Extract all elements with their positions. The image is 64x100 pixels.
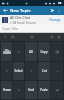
button[interactable]: Attach	[29, 34, 35, 40]
staticText: Topic Title	[2, 26, 18, 31]
button[interactable]: Settings	[56, 34, 62, 40]
staticText: Copy	[40, 50, 48, 54]
staticText: Home	[3, 88, 11, 92]
staticText: All Social Forums	[13, 21, 36, 24]
button[interactable]: Enter	[51, 81, 63, 99]
button[interactable]: Emoji	[49, 34, 55, 40]
button[interactable]: Home	[1, 81, 12, 99]
button[interactable]: End	[25, 81, 37, 99]
button[interactable]: More options	[56, 8, 62, 14]
staticText: Clip Board	[3, 49, 11, 55]
button[interactable]: Copy	[38, 42, 50, 61]
button[interactable]: Cut	[38, 62, 50, 80]
button[interactable]: Search	[10, 34, 16, 40]
button[interactable]: Clip Board	[1, 42, 12, 61]
button[interactable]: All Chit-Chat	[0, 15, 64, 24]
staticText: Select	[14, 69, 23, 73]
button[interactable]: Up	[13, 42, 24, 61]
staticText: End	[28, 88, 34, 92]
button[interactable]: Down	[13, 81, 24, 99]
button[interactable]: Topic Title	[0, 24, 64, 32]
staticText: All	[29, 50, 33, 54]
button[interactable]: Back	[2, 7, 9, 14]
button[interactable]: Right	[25, 62, 37, 80]
button[interactable]: Left	[1, 62, 12, 80]
button[interactable]: All	[25, 42, 37, 61]
button[interactable]: New Topic	[10, 8, 49, 14]
staticText: Paste	[40, 88, 48, 92]
staticText: All Chit-Chat	[10, 15, 31, 20]
button[interactable]: Change	[48, 17, 62, 23]
button[interactable]: Select	[13, 62, 24, 80]
staticText: Change	[49, 18, 61, 22]
button[interactable]: Send	[49, 7, 56, 14]
staticText: New Topic	[10, 8, 31, 14]
staticText: Cut	[42, 69, 47, 73]
button[interactable]: Text cursor	[2, 34, 8, 40]
button[interactable]: Paste	[38, 81, 50, 99]
staticText: ...	[56, 69, 59, 73]
button[interactable]: Backspace	[51, 42, 63, 61]
